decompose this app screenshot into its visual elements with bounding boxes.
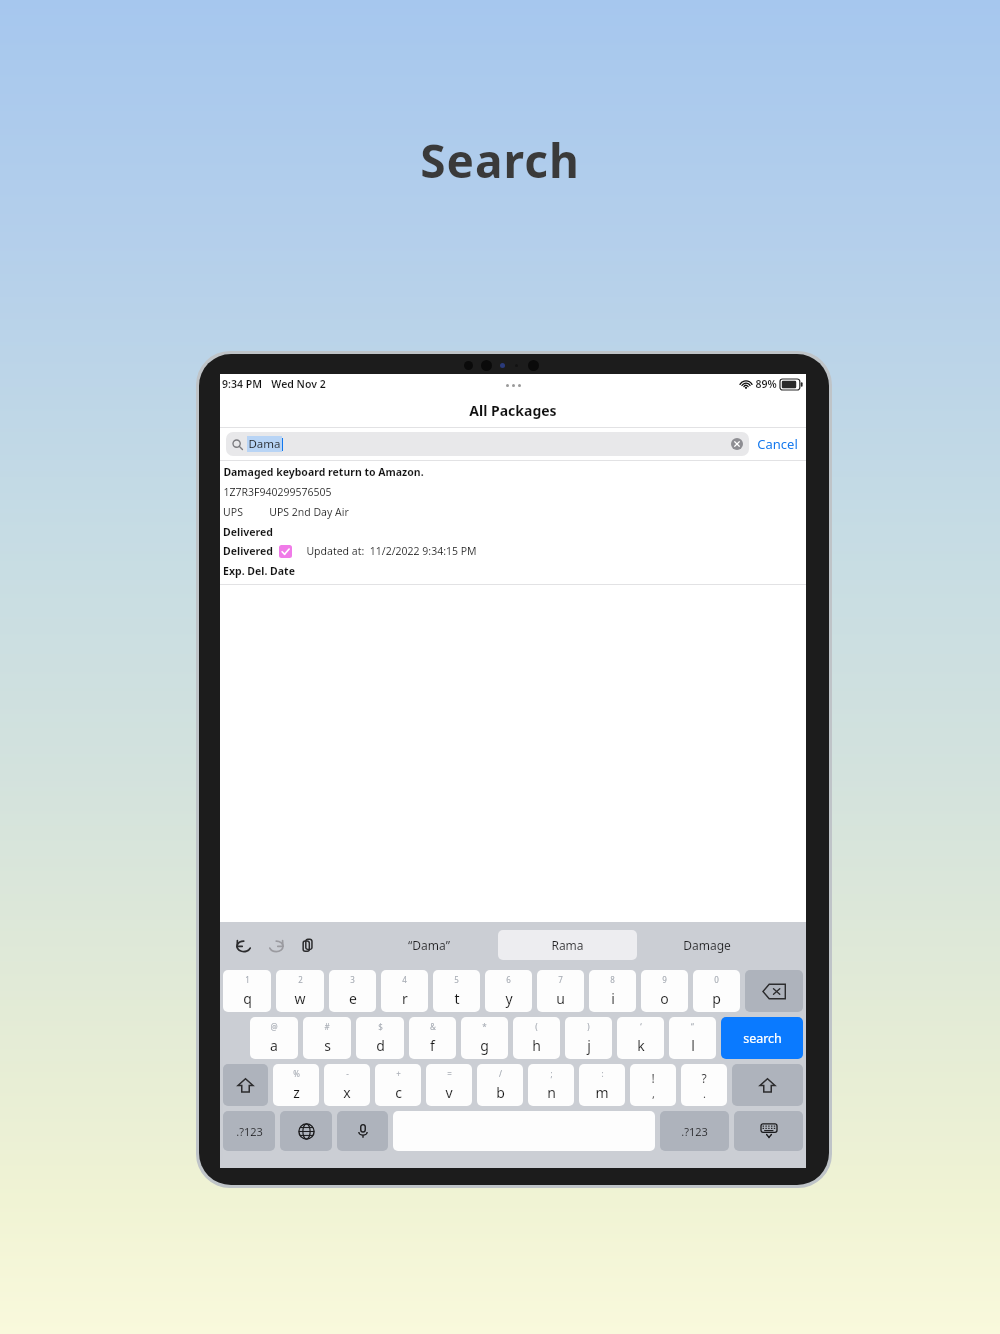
staticText: ) <box>587 1021 590 1032</box>
button[interactable]: 6 <box>485 970 532 1012</box>
staticText: , <box>652 1086 655 1101</box>
staticText: 6 <box>506 974 511 985</box>
staticText: 1Z7R3F940299576505 <box>223 485 332 499</box>
button[interactable]: Undo <box>233 934 255 956</box>
staticText: “Dama” <box>408 937 450 953</box>
button[interactable]: : <box>579 1064 625 1106</box>
staticText: n <box>547 1083 556 1102</box>
staticText: g <box>480 1036 489 1055</box>
staticText: Search <box>420 129 580 192</box>
staticText: Wed Nov 2 <box>271 377 326 391</box>
button[interactable]: + <box>375 1064 421 1106</box>
button[interactable]: - <box>324 1064 370 1106</box>
button[interactable]: 9 <box>641 970 688 1012</box>
staticText: y <box>505 989 513 1008</box>
staticText: 7 <box>558 974 563 985</box>
staticText: q <box>243 989 252 1008</box>
button[interactable]: @ <box>250 1017 298 1059</box>
staticText: .?123 <box>681 1124 708 1139</box>
staticText: 0 <box>714 974 719 985</box>
staticText: Cancel <box>757 435 798 453</box>
staticText: = <box>447 1068 452 1079</box>
staticText: b <box>496 1083 505 1102</box>
button[interactable]: “Dama” <box>360 930 498 960</box>
staticText: / <box>499 1068 502 1079</box>
staticText: ; <box>550 1068 553 1079</box>
button[interactable]: ; <box>528 1064 574 1106</box>
staticText: Rama <box>551 937 584 953</box>
staticText: ‘ <box>640 1021 642 1032</box>
staticText: “ <box>691 1021 694 1032</box>
button[interactable]: Backspace <box>745 970 803 1012</box>
button[interactable]: Delivered checkbox <box>279 545 292 558</box>
button[interactable]: ! <box>630 1064 676 1106</box>
button[interactable]: $ <box>356 1017 404 1059</box>
button[interactable]: Numbers <box>223 1111 275 1151</box>
button[interactable]: 7 <box>537 970 584 1012</box>
button[interactable]: 4 <box>381 970 428 1012</box>
button[interactable]: Change keyboard <box>280 1111 332 1151</box>
staticText: UPS <box>223 505 243 519</box>
staticText: k <box>637 1036 645 1055</box>
staticText: t <box>454 989 460 1008</box>
staticText: a <box>270 1036 278 1055</box>
staticText: - <box>346 1068 349 1079</box>
button[interactable]: ( <box>513 1017 560 1059</box>
button[interactable]: ‘ <box>617 1017 664 1059</box>
button[interactable]: = <box>426 1064 472 1106</box>
button[interactable]: / <box>477 1064 523 1106</box>
staticText: 9:34 PM <box>222 377 262 391</box>
button[interactable]: Hide keyboard <box>734 1111 803 1151</box>
button[interactable]: Damaged keyboard return to Amazon. <box>220 461 806 584</box>
staticText: c <box>395 1083 402 1102</box>
staticText: 1 <box>245 974 250 985</box>
staticText: Damaged keyboard return to Amazon. <box>223 465 424 479</box>
staticText: Exp. Del. Date <box>223 564 295 578</box>
button[interactable]: Rama <box>498 930 637 960</box>
staticText: 5 <box>454 974 459 985</box>
button[interactable]: Clear text <box>731 438 743 450</box>
staticText: search <box>743 1030 782 1047</box>
button[interactable]: & <box>409 1017 456 1059</box>
button[interactable]: ? <box>681 1064 727 1106</box>
staticText: & <box>430 1021 436 1032</box>
staticText: m <box>595 1083 609 1102</box>
staticText: r <box>402 989 408 1008</box>
button[interactable]: Numbers <box>660 1111 729 1151</box>
button[interactable]: % <box>273 1064 319 1106</box>
button[interactable]: “ <box>669 1017 716 1059</box>
button[interactable]: 2 <box>276 970 324 1012</box>
button[interactable]: 3 <box>329 970 376 1012</box>
button[interactable]: Shift <box>223 1064 268 1106</box>
staticText: 4 <box>402 974 407 985</box>
staticText: e <box>349 989 357 1008</box>
staticText: Damage <box>683 937 731 953</box>
button[interactable]: * <box>461 1017 508 1059</box>
staticText: . <box>703 1086 706 1101</box>
button[interactable]: search <box>721 1017 803 1059</box>
button[interactable]: Damage <box>637 930 776 960</box>
staticText: w <box>294 989 306 1008</box>
button[interactable]: 1 <box>223 970 271 1012</box>
staticText: p <box>712 989 721 1008</box>
staticText: Updated at: 11/2/2022 9:34:15 PM <box>306 544 477 558</box>
staticText: Dama <box>248 436 281 452</box>
button[interactable]: Shift <box>732 1064 803 1106</box>
staticText: j <box>587 1036 591 1055</box>
button[interactable]: ) <box>565 1017 612 1059</box>
button[interactable]: 5 <box>433 970 480 1012</box>
staticText: % <box>293 1068 300 1079</box>
staticText: 2 <box>298 974 303 985</box>
button[interactable]: Paste <box>297 934 319 956</box>
button[interactable]: 8 <box>589 970 636 1012</box>
button[interactable]: Cancel <box>749 431 806 457</box>
staticText: 89% <box>755 377 777 391</box>
staticText: 9 <box>662 974 667 985</box>
button[interactable]: Redo <box>265 934 287 956</box>
button[interactable]: # <box>303 1017 351 1059</box>
button[interactable]: 0 <box>693 970 740 1012</box>
staticText: f <box>430 1036 435 1055</box>
button[interactable]: Dictate <box>337 1111 388 1151</box>
button[interactable]: Dama <box>226 432 749 456</box>
